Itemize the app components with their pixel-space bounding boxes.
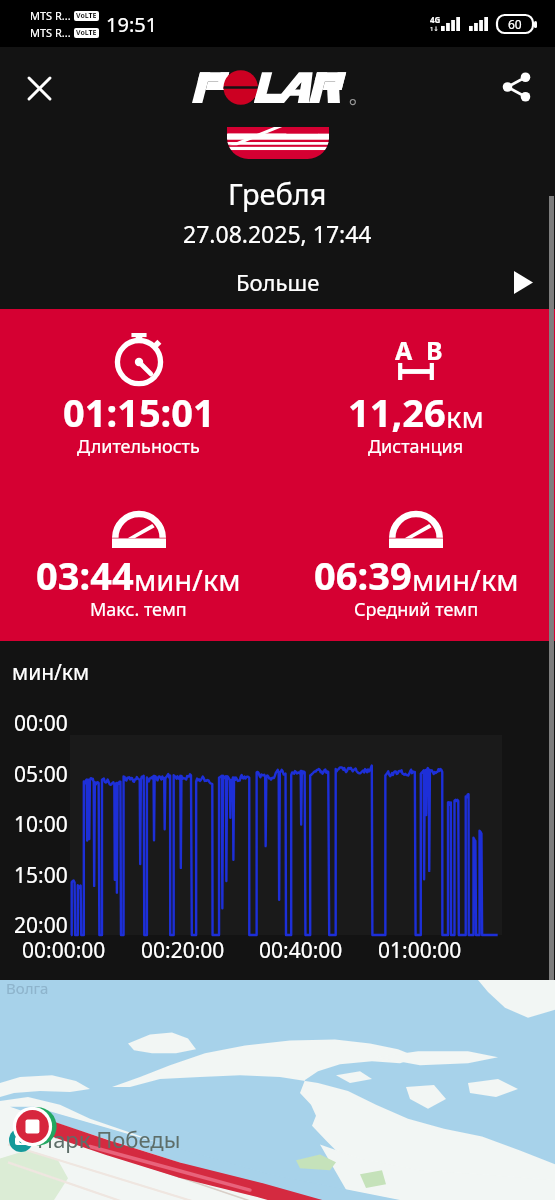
staticText: 00:40:00	[259, 936, 343, 965]
button[interactable]: Share	[491, 58, 541, 108]
staticText: VoLTE	[76, 11, 97, 21]
staticText: MTS R...	[30, 25, 71, 40]
staticText: мин/км	[134, 560, 241, 599]
staticText: 03:44	[36, 549, 134, 601]
button[interactable]: Finish marker	[14, 1106, 55, 1147]
staticText: 60	[508, 16, 522, 32]
staticText: 11,26	[348, 386, 446, 438]
staticText: B	[426, 333, 443, 367]
staticText: 4G	[430, 14, 441, 25]
button[interactable]: Close	[14, 58, 64, 108]
staticText: Макс. темп	[90, 597, 187, 622]
staticText: 00:00	[14, 709, 68, 738]
button[interactable]: Волга	[0, 980, 555, 1200]
staticText: VoLTE	[76, 28, 97, 38]
staticText: 20:00	[14, 911, 68, 940]
staticText: Парк Победы	[37, 1124, 181, 1154]
staticText: Длительность	[77, 434, 200, 459]
staticText: мин/км	[12, 658, 90, 687]
staticText: 00:00:00	[22, 936, 106, 965]
button[interactable]: 01:15:01	[0, 333, 277, 463]
staticText: 00:20:00	[141, 936, 225, 965]
staticText: Волга	[6, 978, 49, 998]
staticText: 01:00:00	[378, 936, 462, 965]
staticText: 1↓	[430, 25, 439, 33]
button[interactable]: 06:39	[277, 496, 555, 626]
button[interactable]: Больше	[0, 255, 555, 309]
staticText: 19:51	[106, 11, 158, 38]
button[interactable]: 03:44	[0, 496, 277, 626]
button[interactable]: Photo point	[9, 1128, 33, 1152]
staticText: 01:15:01	[63, 386, 215, 438]
staticText: мин/км	[412, 560, 519, 599]
staticText: 10:00	[14, 810, 68, 839]
staticText: Гребля	[228, 174, 327, 213]
staticText: 15:00	[14, 861, 68, 890]
button[interactable]: A	[277, 333, 555, 463]
staticText: 06:39	[314, 549, 412, 601]
staticText: км	[446, 397, 484, 436]
staticText: Дистанция	[368, 434, 464, 459]
staticText: MTS R...	[30, 8, 71, 23]
staticText: Средний темп	[354, 597, 479, 622]
staticText: A	[395, 333, 413, 367]
staticText: 05:00	[14, 760, 68, 789]
staticText: Больше	[236, 267, 320, 297]
staticText: 27.08.2025, 17:44	[183, 218, 372, 249]
